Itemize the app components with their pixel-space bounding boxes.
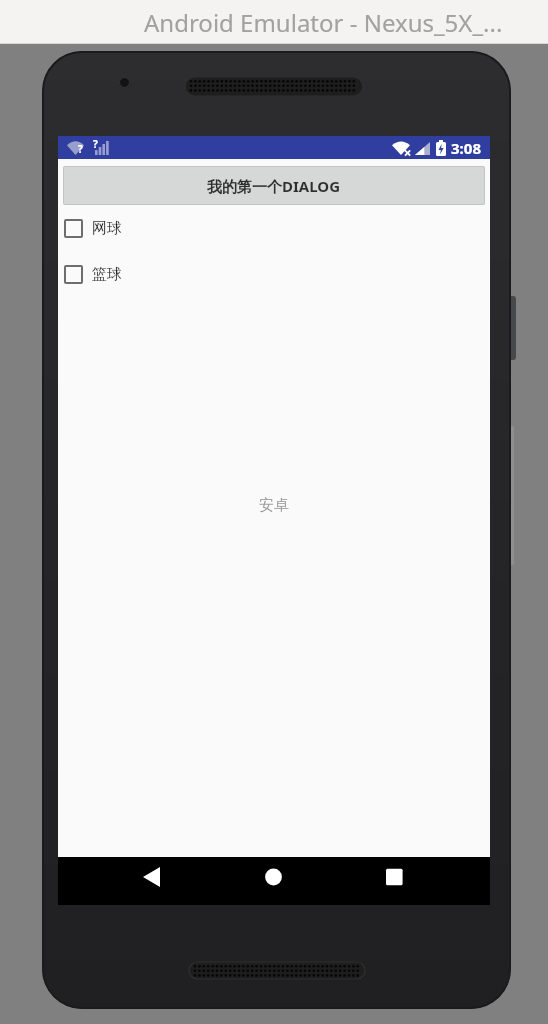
button[interactable] bbox=[346, 857, 490, 905]
staticText: ? bbox=[93, 137, 98, 151]
button[interactable] bbox=[58, 857, 202, 905]
button[interactable]: 篮球 bbox=[58, 262, 490, 287]
staticText: 3:08 bbox=[451, 138, 481, 158]
staticText: Android Emulator - Nexus_5X_... bbox=[144, 6, 503, 39]
staticText: ? bbox=[78, 142, 83, 156]
staticText: 网球 bbox=[92, 219, 122, 238]
button[interactable] bbox=[202, 857, 346, 905]
staticText: 篮球 bbox=[92, 265, 122, 284]
staticText: 安卓 bbox=[259, 496, 289, 515]
button[interactable]: 网球 bbox=[58, 216, 490, 241]
staticText: 我的第一个DIALOG bbox=[207, 176, 341, 196]
